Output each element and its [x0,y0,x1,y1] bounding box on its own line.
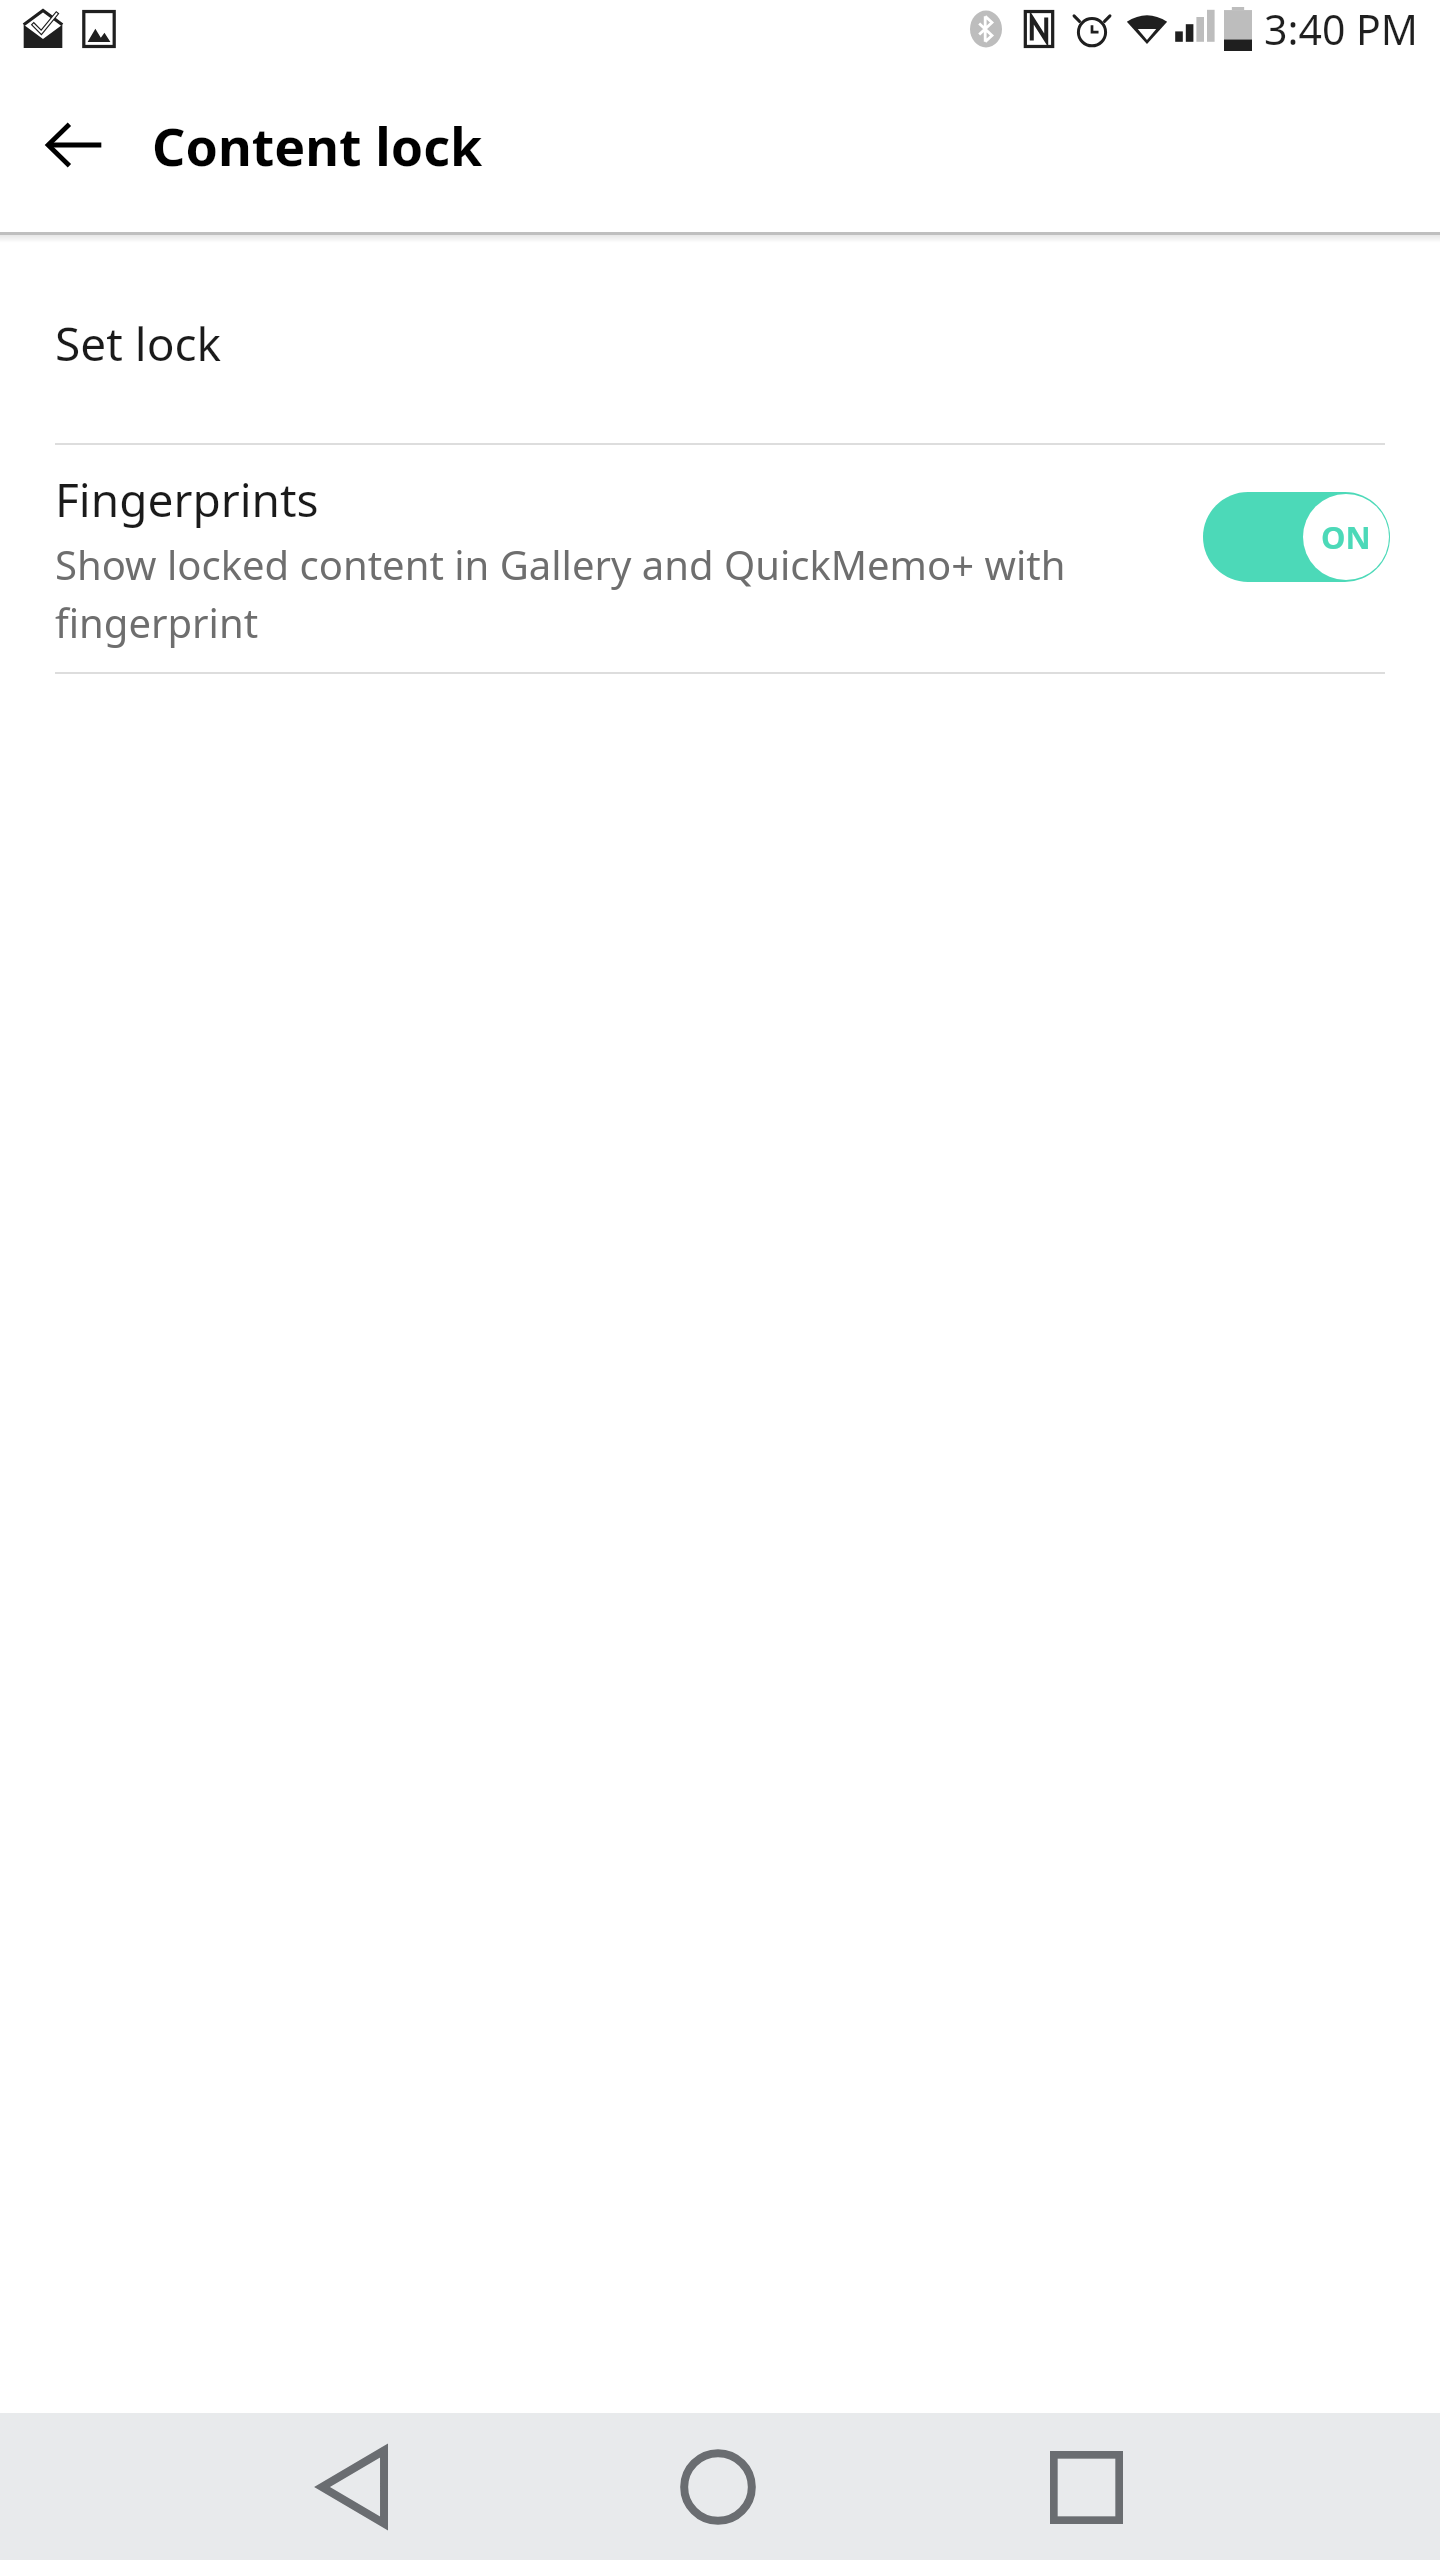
staticText: ON [1321,516,1371,558]
button[interactable]: Back [26,96,124,194]
staticText: Content lock [152,110,483,181]
staticText: 3:40 PM [1264,1,1418,57]
button[interactable]: Set lock [0,243,1440,443]
button[interactable]: Fingerprints on [1203,492,1390,582]
button[interactable]: Fingerprints [0,445,1440,672]
button[interactable]: Recent apps [1016,2417,1156,2557]
button[interactable]: Home [648,2417,788,2557]
button[interactable]: Back [283,2417,423,2557]
staticText: Show locked content in Gallery and Quick… [55,537,1140,650]
staticText: Fingerprints [55,468,319,531]
staticText: Set lock [55,312,222,375]
